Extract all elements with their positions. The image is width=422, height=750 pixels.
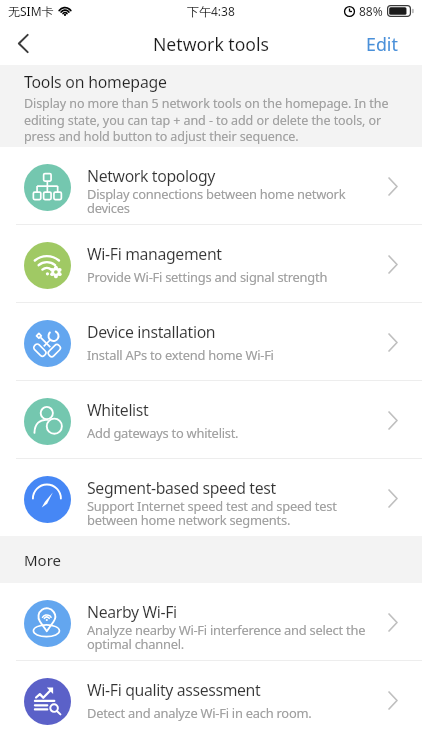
staticText: Network tools <box>153 32 269 56</box>
staticText: Display connections between home network… <box>87 185 370 217</box>
staticText: Device installation <box>87 321 216 343</box>
staticText: Detect and analyze Wi-Fi in each room. <box>87 704 370 722</box>
staticText: 88% <box>359 3 383 19</box>
staticText: Add gateways to whitelist. <box>87 424 370 442</box>
staticText: Whitelist <box>87 399 149 421</box>
staticText: Wi-Fi management <box>87 243 222 265</box>
staticText: Analyze nearby Wi-Fi interference and se… <box>87 621 370 653</box>
button[interactable]: Device installation <box>0 303 422 380</box>
staticText: Install APs to extend home Wi-Fi <box>87 346 370 364</box>
staticText: 下午4:38 <box>187 3 235 19</box>
button[interactable]: Whitelist <box>0 381 422 458</box>
staticText: Tools on homepage <box>24 71 167 93</box>
staticText: Nearby Wi-Fi <box>87 601 177 623</box>
staticText: Segment-based speed test <box>87 477 276 499</box>
staticText: 无SIM卡 <box>8 3 54 19</box>
staticText: Wi-Fi quality assessment <box>87 679 261 701</box>
button[interactable]: Segment-based speed test <box>0 459 422 536</box>
staticText: Network topology <box>87 165 215 187</box>
button[interactable]: Wi-Fi quality assessment <box>0 661 422 738</box>
staticText: More <box>24 550 62 570</box>
button[interactable]: Edit <box>366 22 398 65</box>
staticText: Display no more than 5 network tools on … <box>24 95 399 144</box>
button[interactable]: Wi-Fi management <box>0 225 422 302</box>
button[interactable]: Network topology <box>0 147 422 224</box>
staticText: Edit <box>366 32 398 56</box>
staticText: Support Internet speed test and speed te… <box>87 497 370 529</box>
button[interactable]: Nearby Wi-Fi <box>0 583 422 660</box>
button[interactable]: Back <box>0 22 46 65</box>
staticText: Provide Wi-Fi settings and signal streng… <box>87 268 370 286</box>
